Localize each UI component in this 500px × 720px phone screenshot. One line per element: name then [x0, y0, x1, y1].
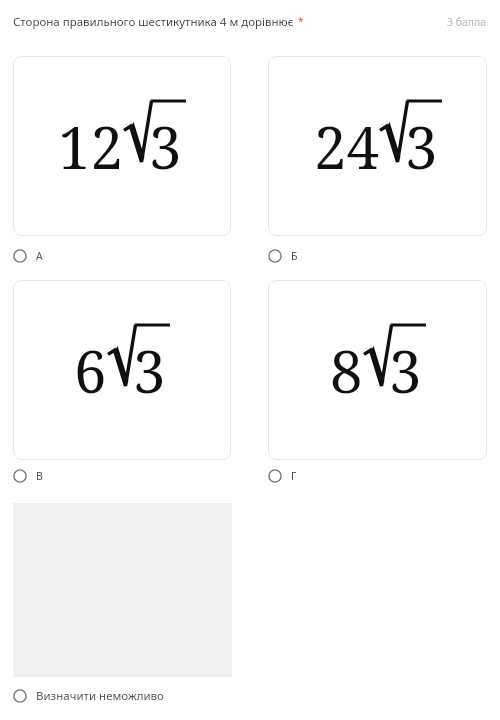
staticText: 3	[389, 331, 422, 410]
staticText: 3 балла	[386, 15, 486, 29]
button[interactable]: Б	[268, 246, 298, 266]
button[interactable]: Г	[268, 466, 297, 486]
staticText: 8	[330, 331, 363, 410]
button[interactable]: Answer option 6 times square root of 3	[13, 280, 231, 460]
button[interactable]: В	[13, 466, 43, 486]
staticText: 12	[58, 107, 123, 186]
staticText: 3	[133, 331, 166, 410]
staticText: 3	[405, 107, 438, 186]
staticText: Визначити неможливо	[36, 688, 164, 704]
staticText: 6	[74, 331, 107, 410]
staticText: 3	[149, 107, 182, 186]
button[interactable]: Визначити неможливо	[13, 686, 164, 706]
staticText: Сторона правильного шестикутника 4 м дор…	[13, 14, 294, 30]
staticText: A	[36, 249, 43, 263]
button[interactable]: Answer option 24 times square root of 3	[268, 56, 487, 236]
button[interactable]: Answer option 12 times square root of 3	[13, 56, 231, 236]
staticText: Б	[291, 249, 298, 263]
staticText: В	[36, 469, 43, 483]
button[interactable]: Answer option 8 times square root of 3	[268, 280, 487, 460]
staticText: Г	[291, 469, 297, 483]
staticText: *	[298, 14, 304, 28]
staticText: 24	[314, 107, 379, 186]
button[interactable]: A	[13, 246, 43, 266]
